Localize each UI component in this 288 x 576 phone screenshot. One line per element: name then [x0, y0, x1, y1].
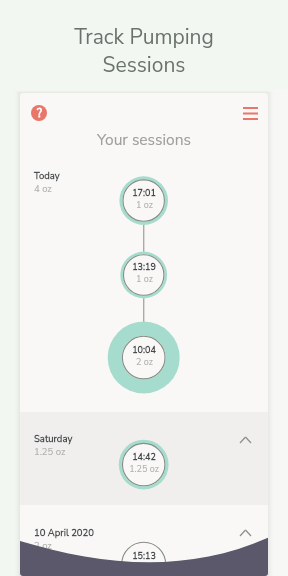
staticText: 1 oz: [136, 273, 153, 285]
staticText: 14:42: [132, 451, 156, 463]
button[interactable]: 13:19: [94, 261, 194, 289]
staticText: ?: [37, 106, 42, 121]
button[interactable]: 17:01: [94, 187, 194, 215]
button[interactable]: 14:42: [94, 451, 194, 479]
staticText: 1 oz: [136, 199, 153, 211]
staticText: Today: [34, 169, 60, 182]
staticText: Your sessions: [20, 129, 268, 150]
staticText: 2 oz: [136, 356, 153, 368]
button[interactable]: Collapse section: [236, 524, 254, 542]
button[interactable]: Help: [31, 105, 47, 121]
staticText: 1.25 oz: [129, 463, 159, 475]
staticText: Track Pumping Sessions: [0, 23, 288, 79]
staticText: Saturday: [34, 432, 73, 445]
staticText: 1.25 oz: [34, 445, 66, 458]
staticText: 17:01: [132, 187, 156, 199]
staticText: 10 April 2020: [34, 526, 94, 539]
staticText: 4 oz: [34, 182, 52, 195]
staticText: 2 oz: [34, 539, 52, 552]
button[interactable]: Menu: [238, 101, 262, 125]
button[interactable]: 10:04: [94, 344, 194, 372]
button[interactable]: 15:13: [94, 550, 194, 576]
button[interactable]: Collapse section: [236, 431, 254, 449]
staticText: 10:04: [132, 344, 156, 356]
staticText: 15:13: [132, 550, 156, 562]
staticText: 13:19: [132, 261, 156, 273]
